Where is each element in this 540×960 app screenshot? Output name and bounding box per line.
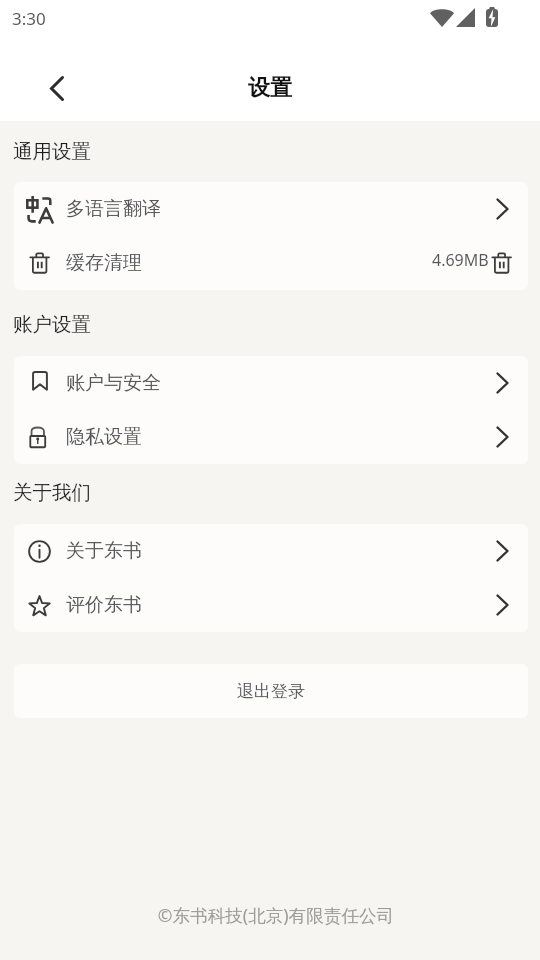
button[interactable]: 清除缓存: [488, 250, 515, 277]
staticText: 通用设置: [13, 139, 91, 164]
staticText: 关于东书: [66, 539, 142, 563]
button[interactable]: 多语言翻译: [14, 182, 528, 236]
staticText: 账户设置: [13, 312, 91, 337]
button[interactable]: 关于东书: [14, 524, 528, 578]
staticText: 退出登录: [237, 681, 305, 702]
staticText: 4.69MB: [432, 249, 489, 271]
button[interactable]: 账户与安全: [14, 356, 528, 410]
button[interactable]: 隐私设置: [14, 410, 528, 464]
button[interactable]: 评价东书: [14, 578, 528, 632]
button[interactable]: Back: [46, 73, 68, 103]
button[interactable]: 缓存清理: [14, 236, 528, 290]
staticText: 3:30: [12, 7, 46, 30]
staticText: ©东书科技(北京)有限责任公司: [6, 903, 540, 927]
staticText: 评价东书: [66, 593, 142, 617]
staticText: 缓存清理: [66, 251, 142, 275]
staticText: 设置: [248, 74, 292, 102]
staticText: 隐私设置: [66, 425, 142, 449]
button[interactable]: 退出登录: [14, 664, 528, 718]
staticText: 关于我们: [13, 480, 91, 505]
staticText: 多语言翻译: [66, 197, 161, 221]
staticText: 账户与安全: [66, 371, 161, 395]
